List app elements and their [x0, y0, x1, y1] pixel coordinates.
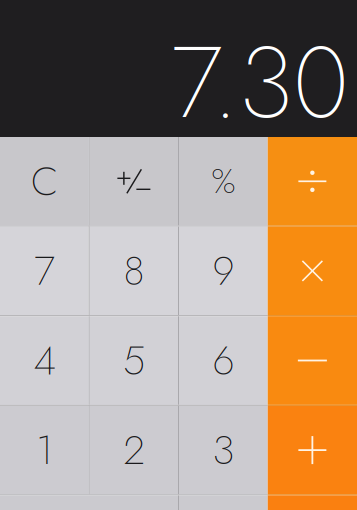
button[interactable]: Multiply — [268, 227, 357, 315]
staticText: 9 — [212, 242, 234, 300]
button[interactable]: Plus minus — [90, 137, 178, 226]
staticText: 4 — [33, 332, 55, 389]
button[interactable]: Minus — [268, 316, 357, 405]
staticText: 7 — [34, 242, 55, 300]
staticText: 1 — [36, 421, 53, 479]
button[interactable]: 2 — [90, 406, 178, 494]
button[interactable]: C — [0, 137, 89, 226]
button[interactable]: 9 — [179, 227, 268, 315]
button[interactable]: 8 — [90, 227, 178, 315]
staticText: C — [31, 152, 58, 210]
button[interactable]: Plus — [268, 406, 357, 494]
staticText: 2 — [123, 421, 144, 479]
button[interactable]: 7 — [0, 227, 89, 315]
staticText: % — [211, 157, 235, 205]
button[interactable]: % — [179, 137, 268, 226]
button[interactable]: 6 — [179, 316, 268, 405]
staticText: 3 — [212, 421, 234, 479]
button[interactable]: 4 — [0, 316, 89, 405]
button[interactable]: 3 — [179, 406, 268, 494]
staticText: 5 — [123, 332, 145, 389]
button[interactable]: 5 — [90, 316, 178, 405]
button[interactable]: 1 — [0, 406, 89, 494]
staticText: 6 — [212, 332, 234, 389]
button[interactable]: Divide — [268, 137, 357, 226]
button[interactable]: Decimal point — [179, 495, 268, 510]
staticText: 8 — [123, 242, 144, 300]
staticText: 7.30 — [171, 11, 349, 154]
